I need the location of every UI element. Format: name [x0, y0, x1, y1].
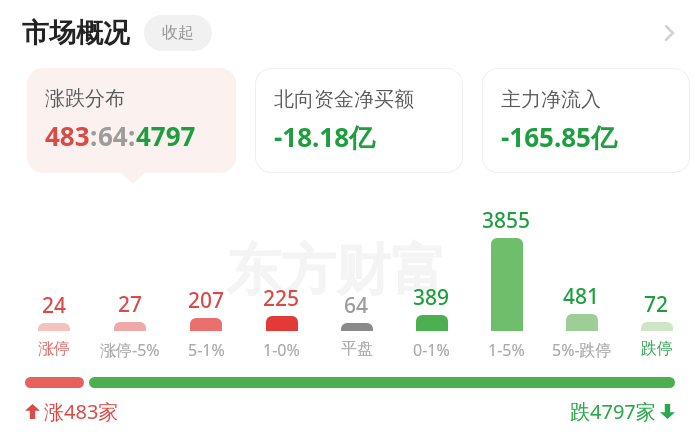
button[interactable]: 涨跌分布 — [27, 68, 236, 173]
staticText: 5%-跌停 — [552, 339, 612, 358]
staticText: 0-1% — [413, 339, 450, 358]
staticText: 64 — [344, 291, 369, 320]
staticText: 64 — [98, 118, 128, 153]
button[interactable]: 主力净流入 — [483, 69, 689, 172]
staticText: 225 — [263, 284, 300, 313]
staticText: 收起 — [162, 23, 194, 43]
staticText: 5-1% — [188, 339, 225, 358]
staticText: 主力净流入 — [501, 87, 601, 112]
staticText: 483 — [45, 118, 90, 153]
staticText: : — [128, 118, 136, 153]
staticText: 涨跌分布 — [45, 86, 125, 111]
staticText: 389 — [413, 283, 450, 312]
staticText: 市场概况 — [22, 16, 130, 50]
staticText: 涨停-5% — [100, 339, 160, 358]
button[interactable]: 收起 — [144, 15, 212, 51]
staticText: 平盘 — [341, 339, 373, 358]
staticText: 207 — [188, 286, 225, 315]
staticText: 涨483家 — [44, 398, 119, 425]
staticText: 3855 — [482, 206, 531, 235]
staticText: 跌4797家 — [570, 398, 656, 425]
button[interactable]: Open market overview — [644, 8, 694, 58]
staticText: 跌停 — [641, 339, 673, 358]
staticText: 涨停 — [38, 339, 70, 358]
staticText: 72 — [644, 290, 669, 319]
staticText: : — [90, 118, 98, 153]
staticText: 1-0% — [263, 339, 300, 358]
staticText: 4797 — [136, 118, 196, 153]
staticText: 1-5% — [488, 339, 525, 358]
staticText: -165.85亿 — [501, 119, 617, 155]
button[interactable]: 北向资金净买额 — [256, 69, 462, 172]
staticText: -18.18亿 — [274, 119, 376, 155]
staticText: 北向资金净买额 — [274, 87, 414, 112]
staticText: 481 — [563, 282, 600, 311]
staticText: 东方财富 — [226, 236, 446, 305]
staticText: 27 — [118, 290, 143, 319]
staticText: 24 — [42, 291, 67, 320]
